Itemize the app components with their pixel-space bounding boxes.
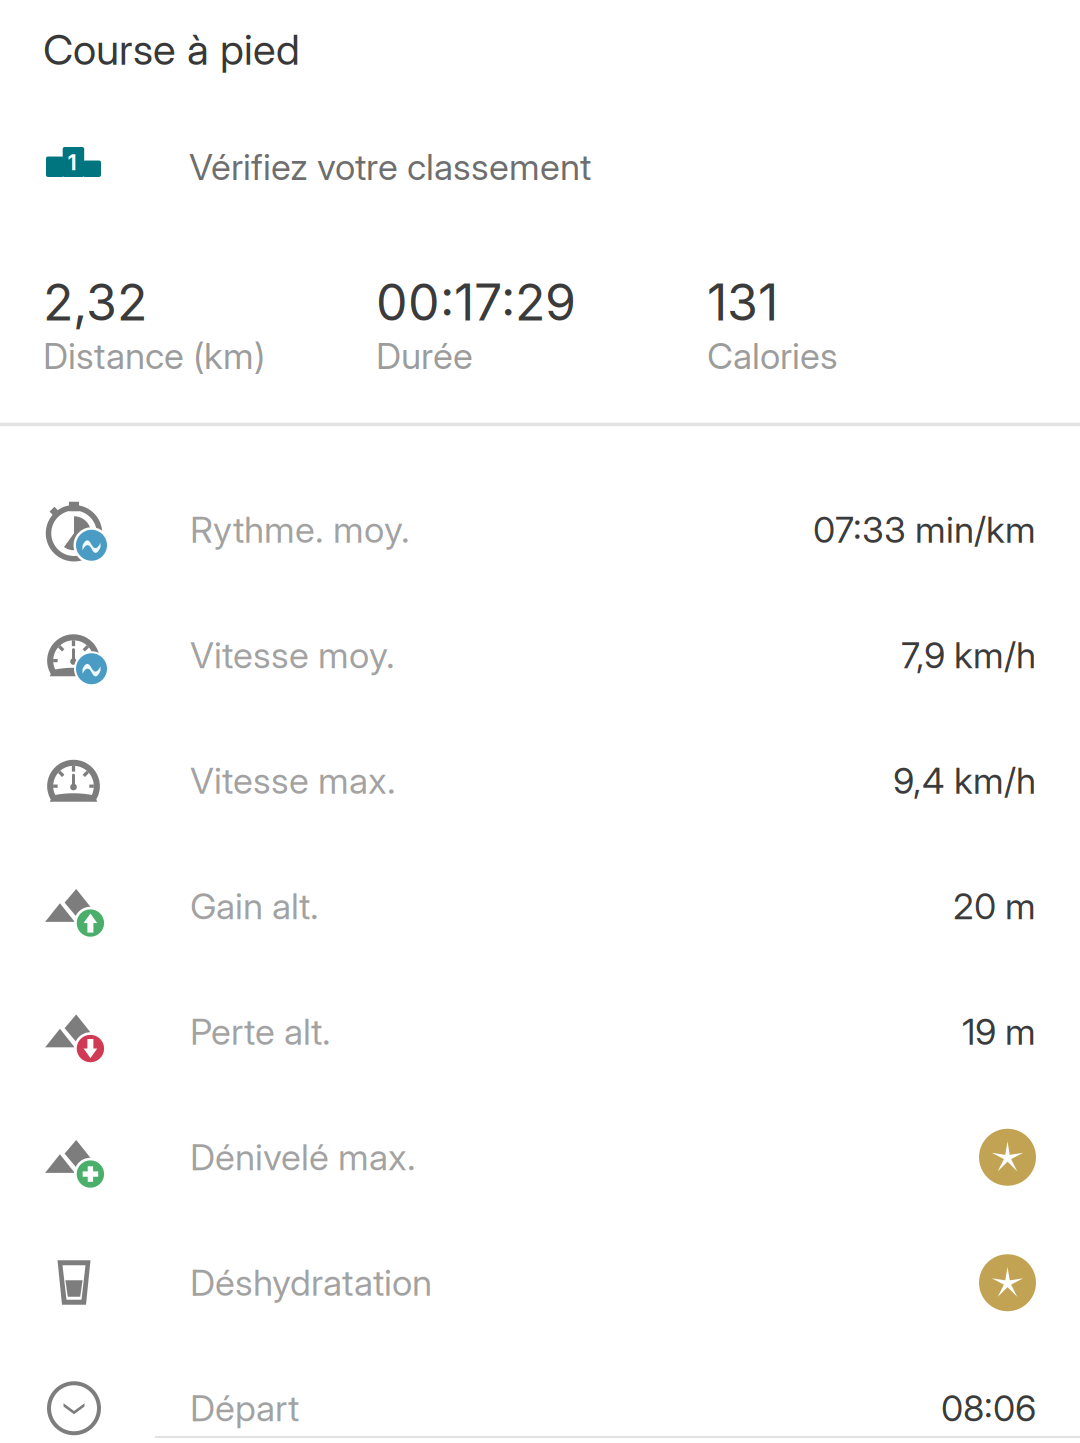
button[interactable]: Perte alt. <box>0 969 1080 1094</box>
staticText: Vitesse max. <box>190 759 396 803</box>
staticText: 07:33 min/km <box>813 508 1036 552</box>
staticText: Perte alt. <box>190 1010 331 1054</box>
staticText: 9,4 km/h <box>893 759 1036 803</box>
staticText: 7,9 km/h <box>901 633 1036 677</box>
button[interactable]: Rythme. moy. <box>0 467 1080 592</box>
staticText: Vérifiez votre classement <box>189 145 591 189</box>
button[interactable]: Déshydratation <box>0 1220 1080 1345</box>
staticText: Durée <box>376 334 473 378</box>
button[interactable]: Vitesse max. <box>0 718 1080 843</box>
button[interactable]: 1 <box>0 131 1080 193</box>
staticText: 2,32 <box>43 272 147 332</box>
button[interactable]: Départ <box>0 1345 1080 1443</box>
staticText: Déshydratation <box>190 1261 432 1305</box>
staticText: Rythme. moy. <box>190 508 410 552</box>
staticText: Distance (km) <box>43 334 265 378</box>
staticText: Course à pied <box>43 24 300 75</box>
staticText: 1 <box>67 149 76 175</box>
staticText: Calories <box>707 334 838 378</box>
button[interactable]: Dénivelé max. <box>0 1094 1080 1220</box>
staticText: Vitesse moy. <box>190 633 395 677</box>
staticText: 131 <box>707 272 778 332</box>
staticText: 19 m <box>962 1010 1036 1054</box>
staticText: Départ <box>190 1386 299 1430</box>
button[interactable]: Gain alt. <box>0 843 1080 969</box>
button[interactable]: Vitesse moy. <box>0 592 1080 718</box>
staticText: 00:17:29 <box>376 272 576 332</box>
staticText: Gain alt. <box>190 884 319 928</box>
staticText: 20 m <box>953 884 1036 928</box>
staticText: 08:06 <box>941 1386 1036 1430</box>
staticText: Dénivelé max. <box>190 1135 416 1179</box>
